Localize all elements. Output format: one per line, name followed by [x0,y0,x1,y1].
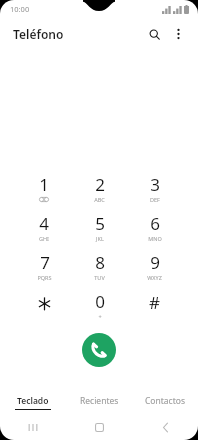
staticText: Contactos [145,395,185,407]
staticText: TUV [94,274,105,281]
button[interactable]: 4 [16,205,72,244]
staticText: GHI [39,235,49,242]
staticText: Recientes [80,395,119,407]
staticText: 4 [39,212,49,235]
staticText: WXYZ [147,274,162,281]
button[interactable]: Search [143,23,165,45]
button[interactable]: Contactos [132,390,198,414]
button[interactable]: # [127,283,182,322]
staticText: 1 [39,173,49,196]
staticText: MNO [148,235,162,242]
staticText: PQRS [37,274,52,281]
staticText: Teléfono [13,26,64,42]
staticText: DEF [150,196,160,203]
staticText: Teclado [17,395,49,407]
staticText: 6 [150,212,160,235]
button[interactable]: 9 [127,244,182,283]
staticText: # [149,291,160,314]
button[interactable]: Recientes [66,390,132,414]
button[interactable]: 0 [72,283,127,322]
button[interactable]: Recents [0,414,66,440]
staticText: 7 [40,251,50,274]
button[interactable]: 5 [72,205,127,244]
button[interactable]: 6 [127,205,182,244]
staticText: 5 [95,212,105,235]
button[interactable]: 7 [16,244,72,283]
staticText: 9 [150,251,160,274]
button[interactable]: 1 [16,166,72,205]
button[interactable]: 8 [72,244,127,283]
staticText: 8 [95,251,105,274]
button[interactable]: Back [132,414,198,440]
staticText: 2 [95,173,105,196]
staticText: 3 [150,173,160,196]
staticText: 0 [95,290,105,313]
staticText: 10:00 [10,4,30,14]
staticText: + [98,313,102,320]
button[interactable]: 2 [72,166,127,205]
button[interactable]: Call [82,333,116,367]
button[interactable]: More options [167,23,189,45]
staticText: ABC [94,196,105,203]
button[interactable]: 3 [127,166,182,205]
button[interactable]: Teclado [0,390,66,414]
button[interactable] [16,283,72,322]
button[interactable]: Home [66,414,132,440]
staticText: JKL [96,235,104,242]
